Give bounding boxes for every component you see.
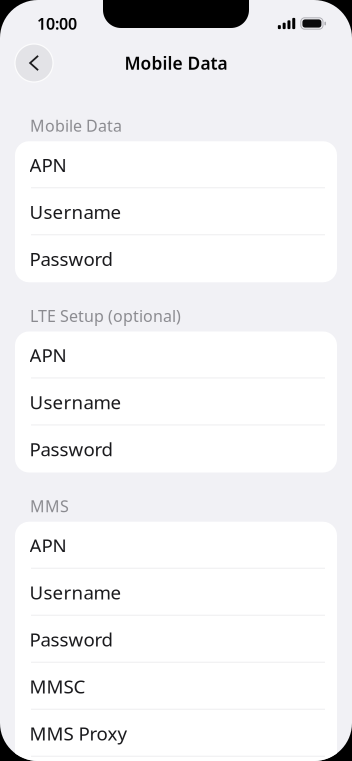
staticText: Username: [30, 580, 122, 605]
staticText: MMS: [30, 495, 69, 517]
staticText: APN: [30, 343, 67, 367]
staticText: Mobile Data: [124, 51, 227, 74]
staticText: Username: [30, 390, 122, 414]
staticText: Password: [30, 246, 113, 271]
button[interactable]: APN: [15, 331, 337, 378]
button[interactable]: Username: [15, 569, 337, 616]
button[interactable]: APN: [15, 522, 337, 569]
staticText: 10:00: [37, 13, 77, 34]
staticText: Mobile Data: [30, 115, 122, 136]
staticText: APN: [30, 533, 67, 558]
staticText: MMSC: [30, 674, 86, 699]
staticText: Password: [30, 437, 113, 461]
button[interactable]: MMSC: [15, 663, 337, 710]
button[interactable]: Password: [15, 425, 337, 472]
staticText: LTE Setup (optional): [30, 305, 181, 326]
button[interactable]: Password: [15, 235, 337, 282]
button[interactable]: APN: [15, 141, 337, 188]
button[interactable]: MMS Proxy: [15, 710, 337, 757]
button[interactable]: Username: [15, 188, 337, 235]
button[interactable]: Maximum Message Size: [15, 757, 337, 761]
staticText: Password: [30, 627, 113, 652]
staticText: MMS Proxy: [30, 721, 128, 746]
staticText: Username: [30, 199, 122, 224]
button[interactable]: Username: [15, 378, 337, 425]
button[interactable]: Back: [15, 44, 53, 82]
button[interactable]: Password: [15, 616, 337, 663]
staticText: APN: [30, 152, 67, 177]
